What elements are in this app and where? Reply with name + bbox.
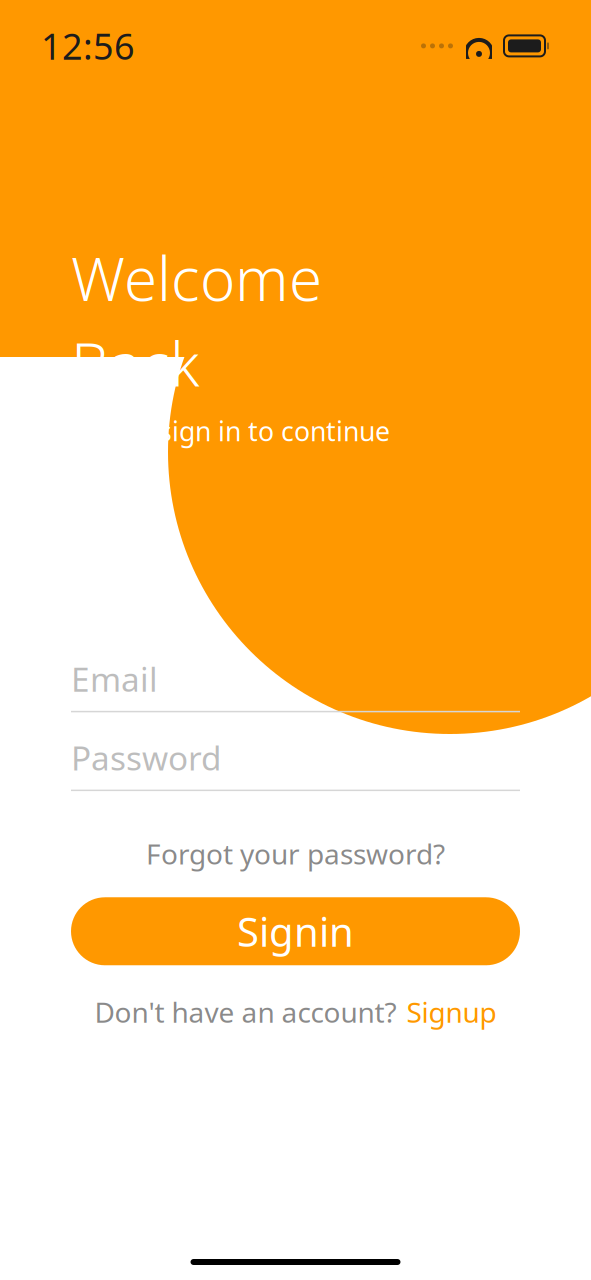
staticText: Signin <box>237 905 354 958</box>
staticText: Please sign in to continue <box>71 413 390 449</box>
staticText: Forgot your password? <box>146 835 445 872</box>
button[interactable]: Forgot your password? <box>71 823 520 884</box>
staticText: Welcome <box>71 238 322 317</box>
button[interactable]: Signin <box>71 897 520 965</box>
staticText: Signup <box>406 993 496 1030</box>
staticText: Email <box>71 657 158 701</box>
staticText: Password <box>71 735 222 780</box>
button[interactable]: Signup <box>406 993 496 1030</box>
staticText: Don't have an account? <box>94 993 396 1030</box>
staticText: 12:56 <box>41 22 135 70</box>
staticText: Back <box>71 323 200 403</box>
